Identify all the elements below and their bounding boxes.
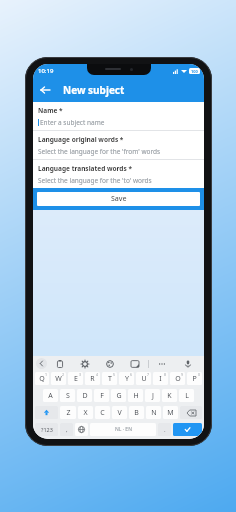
button[interactable]: Symbols [35,423,58,436]
staticText: Select the language for the 'to' words [38,176,152,185]
button[interactable]: Language translated words * [33,160,204,188]
staticText: ?123 [41,426,53,433]
button[interactable]: Enter [173,423,202,436]
staticText: J [152,391,154,401]
staticText: V [117,408,122,418]
staticText: 4 [96,372,99,377]
staticText: P [192,374,197,384]
staticText: C [100,408,105,418]
button[interactable]: T [102,372,117,385]
staticText: NL · EN [115,426,132,433]
staticText: 7 [147,372,150,377]
staticText: 8 [164,372,167,377]
button[interactable]: Voice input [175,356,201,371]
button[interactable]: R [85,372,100,385]
button[interactable]: Change language [75,423,88,436]
staticText: 1 [45,372,48,377]
button[interactable]: Clipboard [47,356,72,371]
button[interactable]: X [78,406,93,419]
button[interactable]: Themes [97,356,122,371]
staticText: 3 [79,372,82,377]
button[interactable]: E [68,372,83,385]
staticText: L [185,391,189,401]
staticText: I [159,374,162,384]
button[interactable]: J [145,389,160,402]
staticText: X [83,408,88,418]
button[interactable]: M [163,406,178,419]
staticText: Enter a subject name [40,118,105,127]
button[interactable]: W [51,372,66,385]
button[interactable]: O [170,372,185,385]
staticText: T [108,374,112,384]
button[interactable]: G [111,389,126,402]
staticText: N [151,408,157,418]
staticText: Language original words * [38,135,124,144]
button[interactable]: L [179,389,194,402]
staticText: Name * [38,106,63,115]
button[interactable]: S [60,389,75,402]
staticText: K [167,391,172,401]
staticText: 0 [198,372,201,377]
button[interactable]: Z [60,406,76,419]
staticText: M [167,408,174,418]
staticText: Q [39,374,45,384]
button[interactable]: U [136,372,151,385]
staticText: O [175,374,181,384]
button[interactable]: Close toolbar [36,358,47,369]
button[interactable]: Backspace [180,406,202,419]
button[interactable]: Y [119,372,134,385]
staticText: B [134,408,139,418]
button[interactable]: Save [37,192,200,206]
button[interactable]: N [146,406,161,419]
staticText: R [90,374,95,384]
button[interactable]: Name * [33,102,204,130]
button[interactable]: More [149,356,175,371]
button[interactable]: Settings [72,356,97,371]
staticText: Save [111,194,127,204]
staticText: 9 [181,372,184,377]
button[interactable]: Comma [60,423,73,436]
button[interactable]: Stickers [122,356,148,371]
staticText: 5 [113,372,116,377]
staticText: . [164,426,166,434]
staticText: Z [66,408,71,418]
staticText: S [66,391,70,401]
staticText: A [48,391,53,401]
staticText: 6 [130,372,133,377]
staticText: New subject [63,83,125,97]
staticText: G [116,391,122,401]
staticText: 10:19 [38,67,54,75]
staticText: H [133,391,139,401]
button[interactable]: Q [35,372,49,385]
button[interactable]: Shift [35,406,58,419]
staticText: 100 [191,69,198,74]
staticText: W [55,374,62,384]
button[interactable]: A [43,389,58,402]
button[interactable]: Back [33,78,57,102]
staticText: Language translated words * [38,164,132,173]
staticText: 2 [62,372,65,377]
button[interactable]: B [129,406,144,419]
button[interactable]: I [153,372,168,385]
button[interactable]: D [77,389,92,402]
staticText: D [82,391,88,401]
button[interactable]: V [112,406,127,419]
button[interactable]: K [162,389,177,402]
staticText: , [66,426,68,434]
staticText: Y [125,374,129,384]
button[interactable]: H [128,389,143,402]
button[interactable]: P [187,372,202,385]
staticText: F [100,391,104,401]
button[interactable]: Space [90,423,156,436]
staticText: E [74,374,78,384]
button[interactable]: Language original words * [33,131,204,159]
button[interactable]: F [94,389,109,402]
button[interactable]: C [95,406,110,419]
staticText: U [141,374,147,384]
button[interactable]: Period [158,423,171,436]
staticText: Select the language for the 'from' words [38,147,161,156]
